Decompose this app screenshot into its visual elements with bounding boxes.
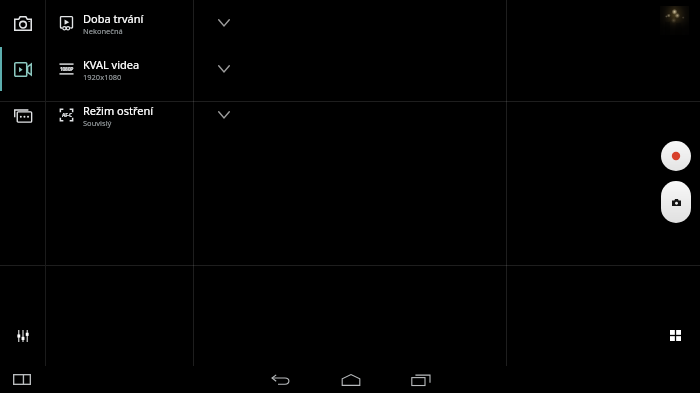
button[interactable]: Expand (194, 46, 254, 92)
staticText: KVAL videa (83, 57, 140, 72)
staticText: Režim ostření (83, 103, 154, 118)
button[interactable]: Split screen (7, 366, 36, 393)
button[interactable]: AF-C (46, 92, 193, 138)
button[interactable]: Settings (8, 321, 37, 350)
staticText: Souvislý (83, 118, 112, 128)
button[interactable]: Grid (661, 321, 690, 350)
staticText: 1080P (60, 66, 74, 73)
button[interactable]: Expand (194, 92, 254, 138)
staticText: AF-C (62, 112, 72, 119)
button[interactable]: Recent apps (406, 366, 435, 393)
button[interactable]: 1080P (46, 46, 193, 92)
button[interactable]: Video mode (0, 46, 45, 92)
button[interactable]: Take photo (655, 175, 697, 229)
button[interactable]: Gallery thumbnail (660, 6, 689, 35)
button[interactable]: Record video (655, 135, 697, 177)
staticText: 1920x1080 (83, 72, 122, 82)
button[interactable]: Expand (194, 0, 254, 46)
button[interactable]: Back (266, 366, 295, 393)
staticText: Nekonečná (83, 26, 123, 36)
staticText: Doba trvání (83, 11, 144, 26)
button[interactable]: Photo mode (0, 0, 45, 46)
button[interactable]: Home (336, 366, 365, 393)
button[interactable]: More modes (0, 92, 45, 138)
button[interactable]: Doba trvání (46, 0, 193, 46)
